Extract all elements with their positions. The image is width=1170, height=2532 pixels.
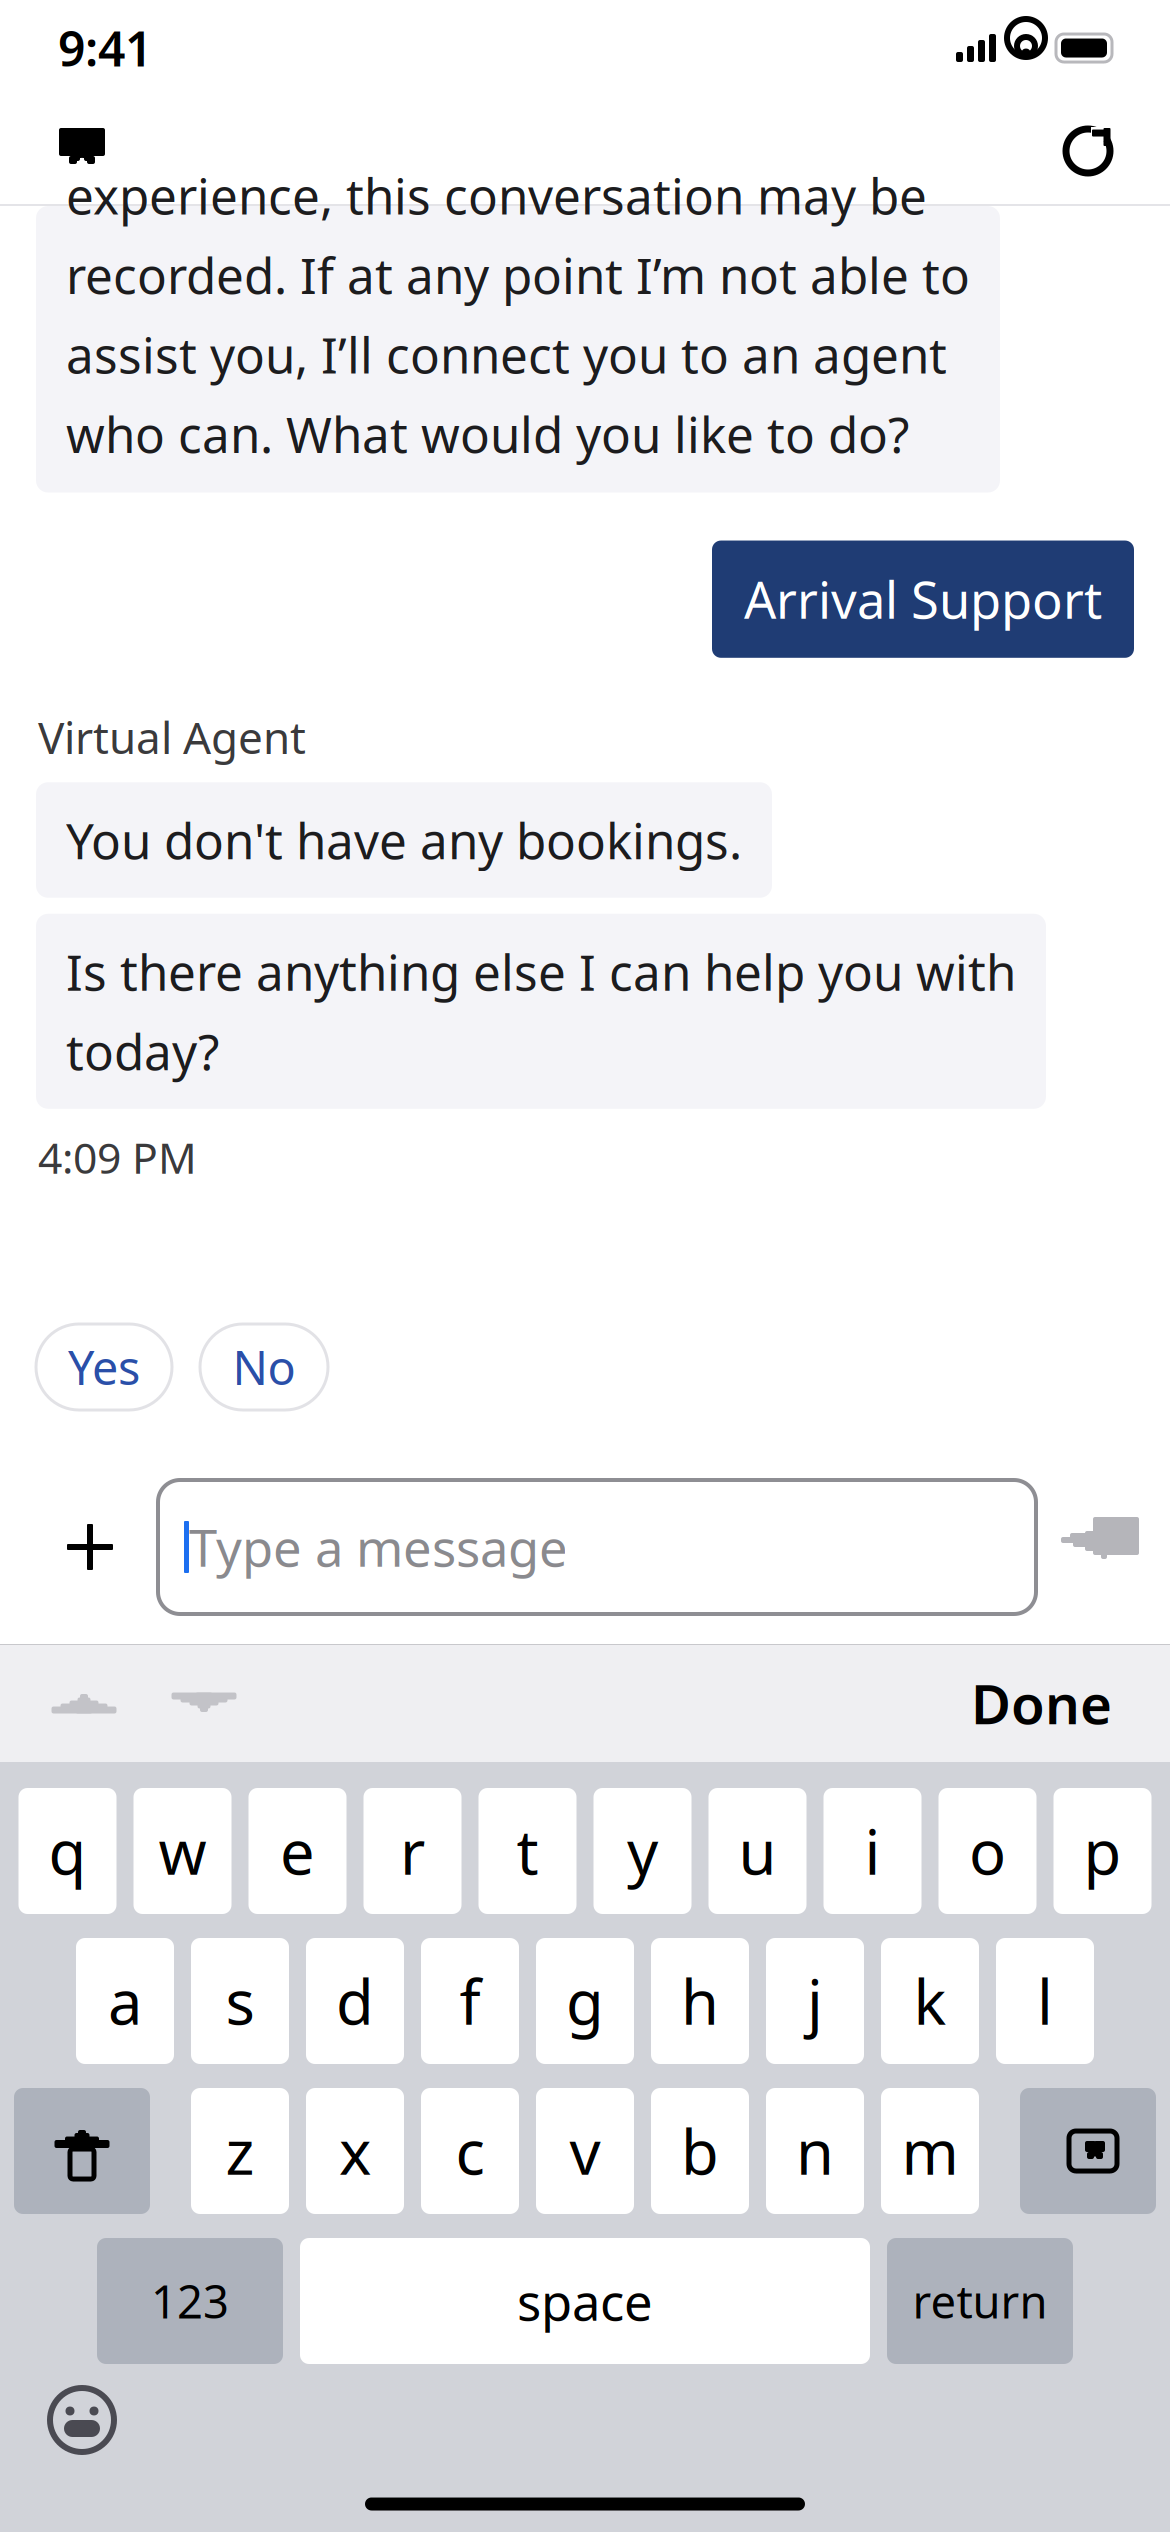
staticText: Arrival Support — [744, 565, 1102, 633]
staticText: recorded. If at any point I’m not able t… — [66, 242, 970, 307]
button[interactable]: Add attachment — [60, 1517, 120, 1577]
button[interactable]: return — [887, 2238, 1073, 2364]
button[interactable]: x — [306, 2088, 404, 2214]
button[interactable]: Emoji — [46, 2384, 118, 2456]
staticText: r — [400, 1810, 425, 1892]
button[interactable]: i — [823, 1788, 921, 1914]
button[interactable]: o — [938, 1788, 1036, 1914]
button[interactable]: y — [593, 1788, 691, 1914]
button[interactable]: v — [536, 2088, 634, 2214]
staticText: s — [225, 1960, 254, 2042]
button[interactable]: r — [363, 1788, 461, 1914]
button[interactable]: g — [536, 1938, 634, 2064]
staticText: w — [158, 1810, 206, 1892]
staticText: 9:41 — [58, 16, 152, 80]
staticText: Yes — [68, 1336, 140, 1398]
button[interactable]: m — [881, 2088, 979, 2214]
button[interactable]: p — [1053, 1788, 1151, 1914]
button[interactable]: Type a message — [158, 1480, 1036, 1614]
staticText: who can. What would you like to do? — [66, 401, 909, 466]
staticText: assist you, I’ll connect you to an agent — [66, 321, 947, 387]
staticText: i — [864, 1810, 880, 1892]
button[interactable]: Refresh — [1058, 121, 1118, 181]
staticText: h — [681, 1960, 719, 2042]
button[interactable]: space — [300, 2238, 870, 2364]
button[interactable]: Close — [52, 121, 112, 181]
button[interactable]: w — [133, 1788, 231, 1914]
button[interactable]: h — [651, 1938, 749, 2064]
staticText: c — [455, 2110, 484, 2192]
button[interactable]: e — [248, 1788, 346, 1914]
staticText: 4:09 PM — [38, 1129, 197, 1185]
button[interactable]: q — [18, 1788, 116, 1914]
button[interactable]: Yes — [36, 1324, 172, 1410]
staticText: z — [225, 2110, 254, 2192]
staticText: 123 — [151, 2271, 229, 2331]
staticText: m — [901, 2110, 958, 2192]
staticText: experience, this conversation may be — [66, 162, 927, 228]
button[interactable]: No — [200, 1324, 328, 1410]
button[interactable]: n — [766, 2088, 864, 2214]
staticText: today? — [66, 1018, 219, 1084]
button[interactable]: l — [996, 1938, 1094, 2064]
staticText: d — [336, 1960, 374, 2042]
staticText: Type a message — [189, 1513, 568, 1581]
button[interactable]: f — [421, 1938, 519, 2064]
staticText: k — [913, 1960, 946, 2042]
staticText: u — [738, 1810, 776, 1892]
button[interactable]: z — [191, 2088, 289, 2214]
staticText: l — [1037, 1960, 1053, 2042]
staticText: e — [280, 1810, 315, 1892]
staticText: q — [48, 1810, 86, 1892]
button[interactable]: Previous field — [52, 1678, 116, 1728]
staticText: Virtual Agent — [38, 708, 306, 766]
staticText: p — [1083, 1810, 1121, 1892]
button[interactable]: t — [478, 1788, 576, 1914]
staticText: v — [569, 2110, 600, 2192]
staticText: n — [796, 2110, 834, 2192]
staticText: No — [232, 1336, 295, 1398]
button[interactable]: d — [306, 1938, 404, 2064]
staticText: j — [807, 1960, 823, 2042]
staticText: b — [681, 2110, 719, 2192]
button[interactable]: b — [651, 2088, 749, 2214]
button[interactable]: Send — [1064, 1508, 1142, 1586]
button[interactable]: Next field — [172, 1678, 236, 1728]
staticText: x — [339, 2110, 371, 2192]
button[interactable]: j — [766, 1938, 864, 2064]
staticText: Is there anything else I can help you wi… — [66, 939, 1016, 1004]
staticText: return — [912, 2271, 1047, 2331]
staticText: o — [969, 1810, 1006, 1892]
button[interactable]: k — [881, 1938, 979, 2064]
staticText: space — [517, 2267, 653, 2335]
button[interactable]: s — [191, 1938, 289, 2064]
staticText: g — [566, 1960, 604, 2042]
button[interactable]: Delete — [1020, 2088, 1156, 2214]
staticText: You don't have any bookings. — [66, 807, 742, 873]
staticText: a — [108, 1960, 142, 2042]
button[interactable]: a — [76, 1938, 174, 2064]
button[interactable]: Done — [971, 1667, 1112, 1739]
staticText: f — [459, 1960, 480, 2042]
button[interactable]: c — [421, 2088, 519, 2214]
staticText: t — [516, 1810, 538, 1892]
button[interactable]: u — [708, 1788, 806, 1914]
staticText: Done — [971, 1667, 1112, 1739]
button[interactable]: Shift — [14, 2088, 150, 2214]
staticText: y — [627, 1810, 658, 1892]
button[interactable]: 123 — [97, 2238, 283, 2364]
